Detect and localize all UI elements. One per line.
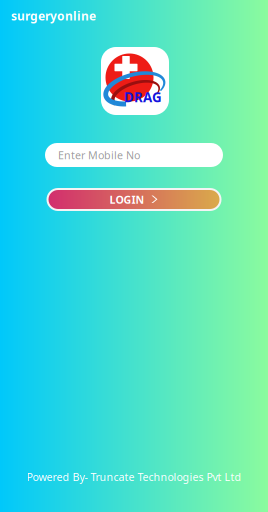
button[interactable]: Enter Mobile No [45,143,223,167]
staticText: LOGIN [109,192,144,207]
staticText: surgeryonline [11,8,96,24]
staticText: DRAG [124,88,162,106]
button[interactable]: LOGIN [46,188,221,211]
staticText: Enter Mobile No [58,148,140,162]
staticText: Powered By- Truncate Technologies Pvt Lt… [26,470,241,484]
